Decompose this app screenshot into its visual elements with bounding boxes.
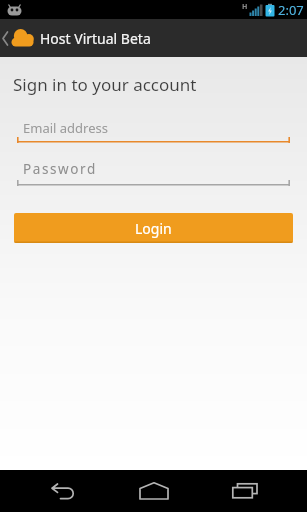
- staticText: 2:07: [278, 1, 304, 19]
- button[interactable]: Password: [0, 160, 307, 186]
- staticText: Host Virtual Beta: [40, 29, 151, 48]
- button[interactable]: [225, 470, 265, 512]
- staticText: Login: [135, 219, 172, 238]
- button[interactable]: [134, 470, 174, 512]
- staticText: H: [242, 2, 248, 12]
- staticText: Sign in to your account: [13, 73, 197, 96]
- staticText: Password: [23, 160, 97, 178]
- button[interactable]: Login: [14, 213, 293, 243]
- button[interactable]: Host Virtual Beta: [0, 19, 307, 57]
- staticText: Email address: [23, 119, 108, 137]
- button[interactable]: Email address: [0, 119, 307, 143]
- button[interactable]: [43, 470, 83, 512]
